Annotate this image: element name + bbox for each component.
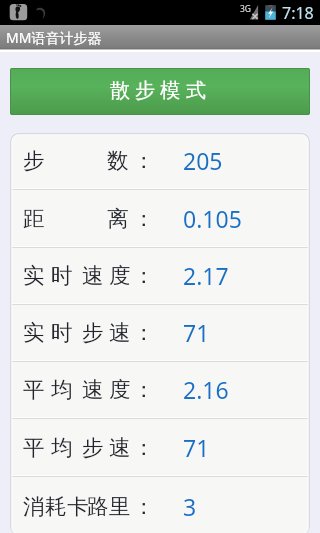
staticText: ： — [133, 262, 155, 289]
staticText: ： — [133, 319, 155, 346]
staticText: 速 — [109, 434, 131, 461]
button[interactable]: 散 — [10, 68, 310, 115]
button[interactable]: 实 — [10, 305, 310, 360]
staticText: ： — [133, 434, 155, 461]
staticText: 步 — [23, 147, 45, 174]
staticText: 205 — [183, 145, 223, 176]
staticText: 71 — [183, 432, 210, 463]
staticText: ： — [133, 493, 155, 520]
staticText: 71 — [183, 317, 210, 348]
staticText: 7:18 — [282, 2, 314, 24]
staticText: ： — [133, 205, 155, 232]
staticText: 2.17 — [183, 260, 229, 291]
button[interactable]: 距 — [10, 190, 310, 246]
staticText: 3G — [240, 3, 252, 15]
staticText: 均 — [51, 434, 73, 461]
staticText: ： — [133, 376, 155, 403]
staticText: 步 — [135, 78, 155, 103]
staticText: 速 — [82, 262, 104, 289]
staticText: 实 — [23, 262, 45, 289]
staticText: 消 — [23, 493, 45, 520]
staticText: 里 — [109, 493, 131, 520]
staticText: 速 — [82, 376, 104, 403]
staticText: 度 — [109, 376, 131, 403]
staticText: 耗 — [45, 493, 67, 520]
staticText: 速 — [109, 319, 131, 346]
staticText: 平 — [23, 434, 45, 461]
staticText: 实 — [23, 319, 45, 346]
staticText: 0.105 — [183, 203, 242, 234]
staticText: 步 — [82, 434, 104, 461]
button[interactable]: 消 — [10, 477, 310, 533]
staticText: 路 — [87, 493, 109, 520]
staticText: 数 — [107, 147, 129, 174]
button[interactable]: 平 — [10, 419, 310, 475]
staticText: 距 — [23, 205, 45, 232]
button[interactable]: 步 — [10, 133, 310, 188]
staticText: 离 — [107, 205, 129, 232]
staticText: 时 — [51, 319, 73, 346]
staticText: 平 — [23, 376, 45, 403]
staticText: 3 — [183, 491, 197, 522]
staticText: 模 — [160, 78, 180, 103]
staticText: 式 — [186, 78, 206, 103]
staticText: 卡 — [67, 493, 89, 520]
staticText: 2.16 — [183, 374, 229, 405]
staticText: 度 — [109, 262, 131, 289]
staticText: 步 — [82, 319, 104, 346]
button[interactable]: 实 — [10, 248, 310, 303]
staticText: 均 — [51, 376, 73, 403]
staticText: 时 — [51, 262, 73, 289]
staticText: MM语音计步器 — [6, 28, 102, 47]
staticText: ： — [133, 147, 155, 174]
button[interactable]: 平 — [10, 362, 310, 417]
staticText: 散 — [110, 78, 130, 103]
